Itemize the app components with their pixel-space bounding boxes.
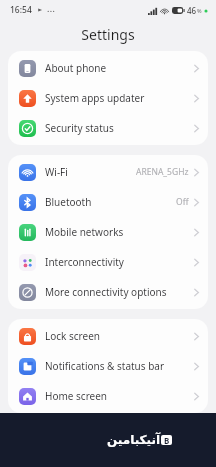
staticText: Notifications & status bar	[45, 359, 165, 373]
staticText: 16:54	[10, 4, 32, 16]
button[interactable]: Interconnectivity	[8, 247, 208, 277]
staticText: Security status	[45, 121, 114, 135]
button[interactable]: Home screen	[8, 381, 208, 411]
staticText: More connectivity options	[45, 285, 167, 299]
staticText: Lock screen	[45, 329, 101, 343]
button[interactable]: Bluetooth	[8, 187, 208, 217]
staticText: Mobile networks	[45, 225, 124, 239]
button[interactable]: More connectivity options	[8, 277, 208, 307]
staticText: Bluetooth	[45, 195, 92, 209]
button[interactable]: About phone	[8, 53, 208, 83]
staticText: Wi-Fi	[45, 165, 68, 179]
button[interactable]: Notifications & status bar	[8, 351, 208, 381]
button[interactable]: System apps updater	[8, 83, 208, 113]
staticText: System apps updater	[45, 91, 145, 105]
staticText: About phone	[45, 61, 107, 75]
staticText: %	[197, 7, 202, 14]
staticText: 46	[187, 5, 197, 16]
staticText: Settings	[81, 25, 135, 44]
button[interactable]: Security status	[8, 113, 208, 143]
button[interactable]: Lock screen	[8, 321, 208, 351]
button[interactable]: Wi-Fi	[8, 157, 208, 187]
staticText: Off	[176, 196, 189, 208]
staticText: Interconnectivity	[45, 255, 124, 269]
staticText: آنیکبامین	[107, 433, 161, 447]
button[interactable]: Mobile networks	[8, 217, 208, 247]
staticText: Home screen	[45, 389, 108, 403]
staticText: B	[164, 435, 170, 445]
staticText: ARENA_5GHz	[136, 166, 189, 178]
